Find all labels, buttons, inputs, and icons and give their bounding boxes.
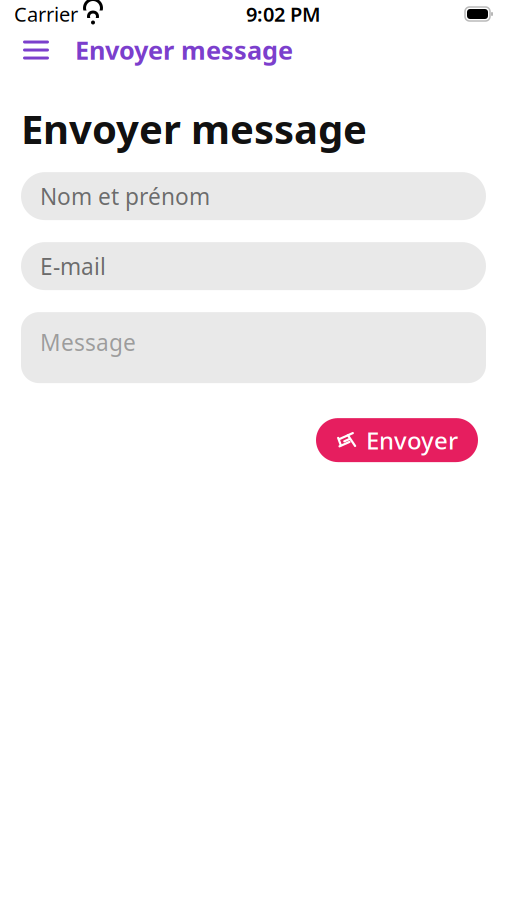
staticText: Envoyer message — [75, 33, 293, 67]
button[interactable]: Envoyer — [316, 418, 478, 462]
staticText: Envoyer — [366, 424, 458, 456]
staticText: Nom et prénom — [40, 181, 210, 211]
staticText: 9:02 PM — [246, 1, 321, 27]
staticText: Envoyer message — [21, 102, 367, 155]
staticText: E-mail — [40, 251, 106, 281]
staticText: Message — [40, 327, 136, 357]
staticText: Carrier — [14, 1, 78, 27]
button[interactable]: Menu — [14, 33, 58, 67]
